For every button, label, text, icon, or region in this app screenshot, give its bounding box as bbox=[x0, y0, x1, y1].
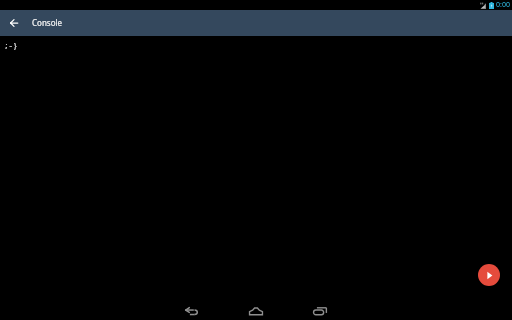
staticText: 0:00 bbox=[496, 0, 510, 10]
staticText: ;-} bbox=[4, 40, 18, 50]
button[interactable]: Navigate up bbox=[4, 13, 24, 33]
button[interactable]: Recent apps bbox=[307, 296, 333, 320]
button[interactable]: Home bbox=[243, 296, 269, 320]
button[interactable]: Back bbox=[178, 296, 204, 320]
staticText: Console bbox=[32, 17, 63, 28]
button[interactable]: Run bbox=[478, 264, 500, 286]
